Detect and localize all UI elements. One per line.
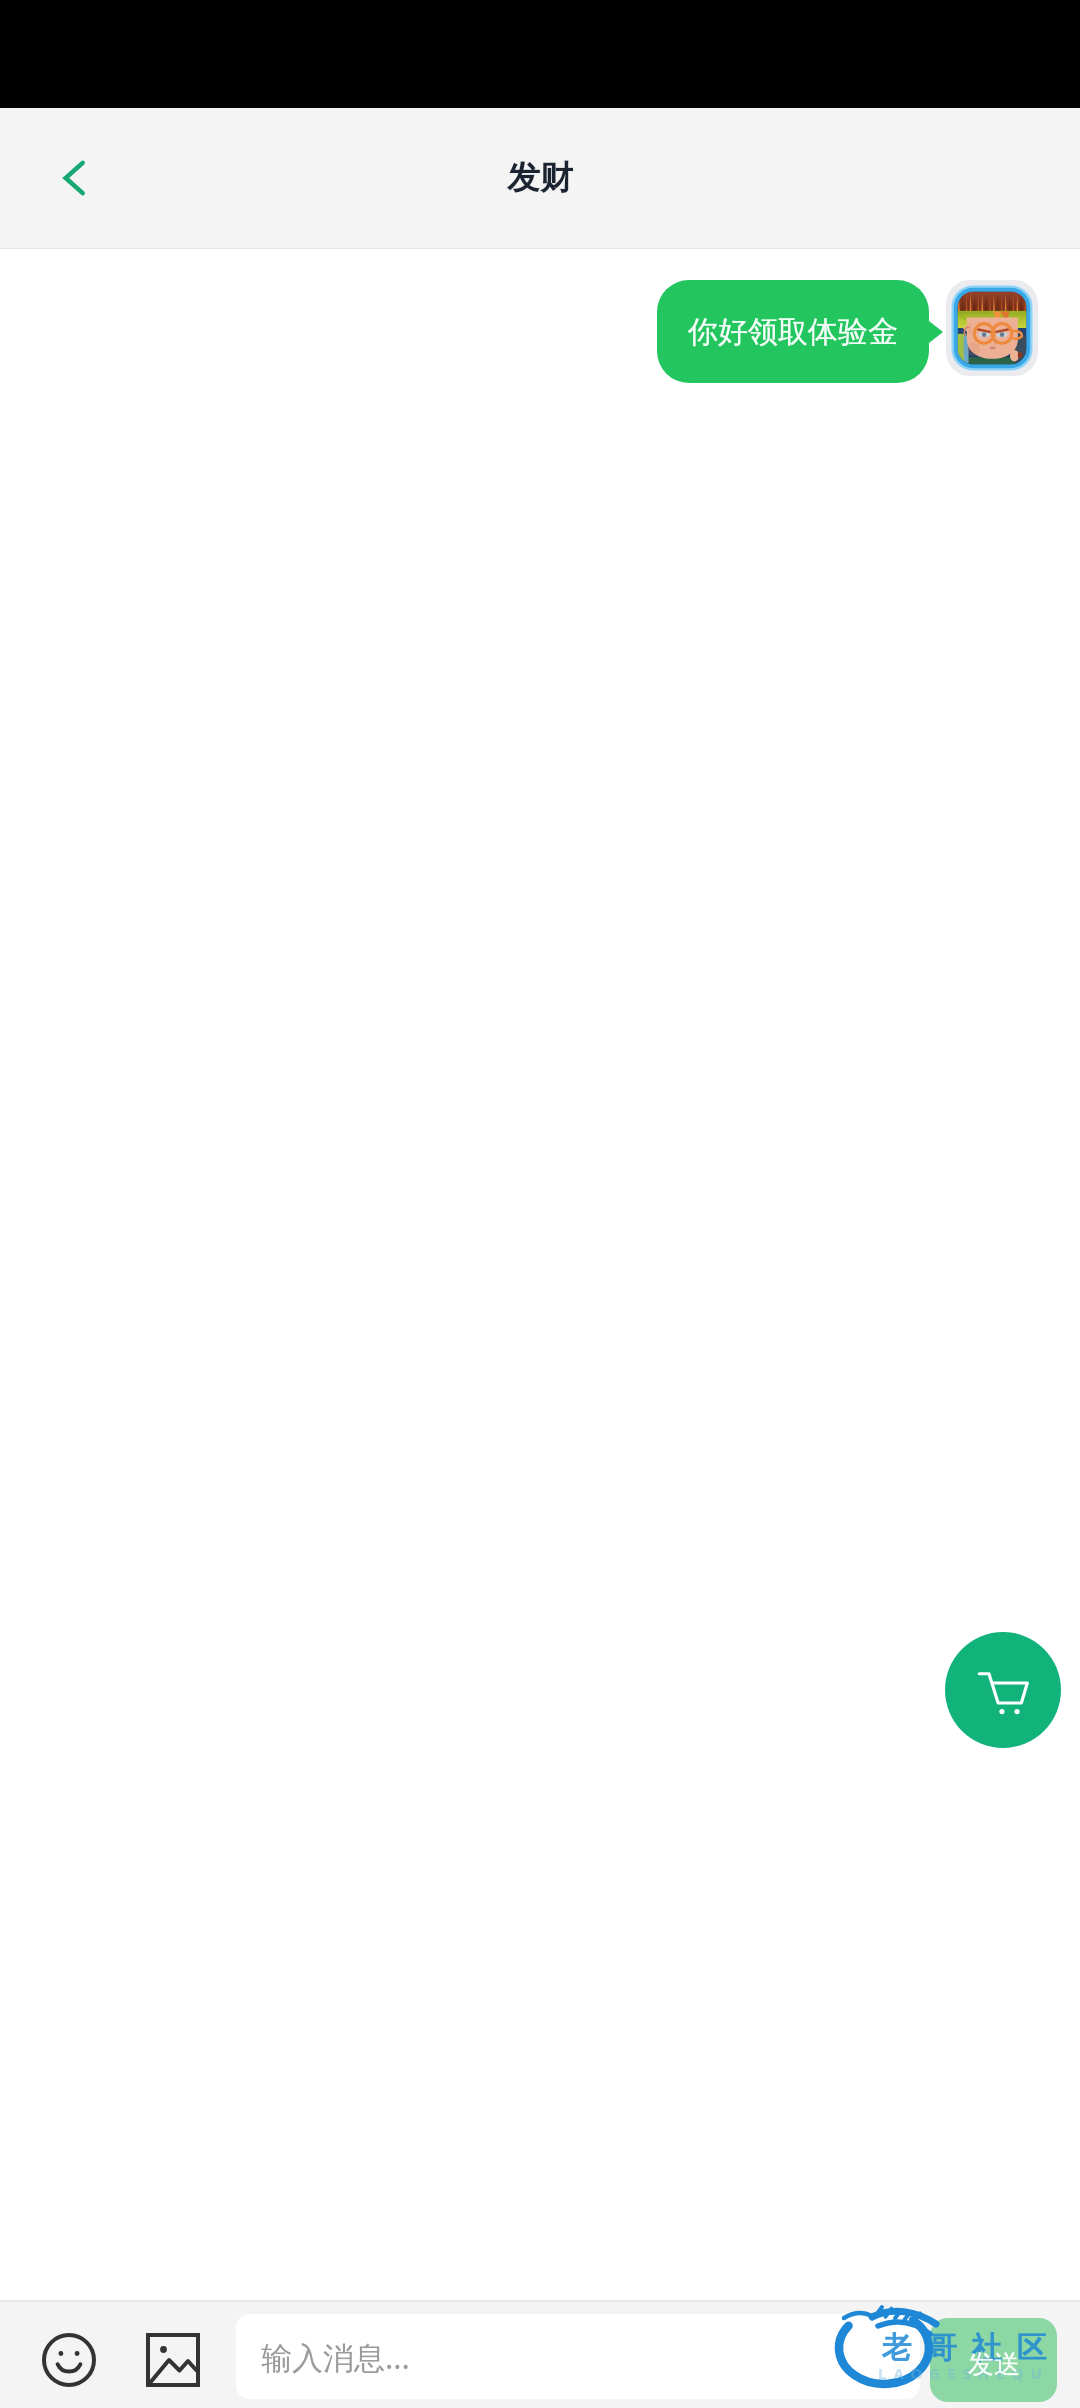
button[interactable]: 发送 [930, 2322, 1057, 2406]
staticText: LAOGESHEQU [878, 2363, 1049, 2383]
button[interactable]: Image [147, 2334, 199, 2386]
button[interactable]: Emoji [41, 2332, 97, 2388]
button[interactable]: 输入消息... [236, 2314, 920, 2399]
staticText: 输入消息... [261, 2336, 410, 2378]
button[interactable]: Shopping cart [945, 1632, 1061, 1748]
button[interactable]: 你好领取体验金 [657, 280, 929, 383]
button[interactable]: Back [45, 149, 103, 207]
staticText: 发送 [968, 2348, 1020, 2381]
staticText: 发财 [507, 157, 573, 199]
staticText: 你好领取体验金 [688, 313, 898, 351]
button[interactable]: Avatar [946, 280, 1038, 376]
staticText: 老哥社区 [874, 2329, 1054, 2367]
